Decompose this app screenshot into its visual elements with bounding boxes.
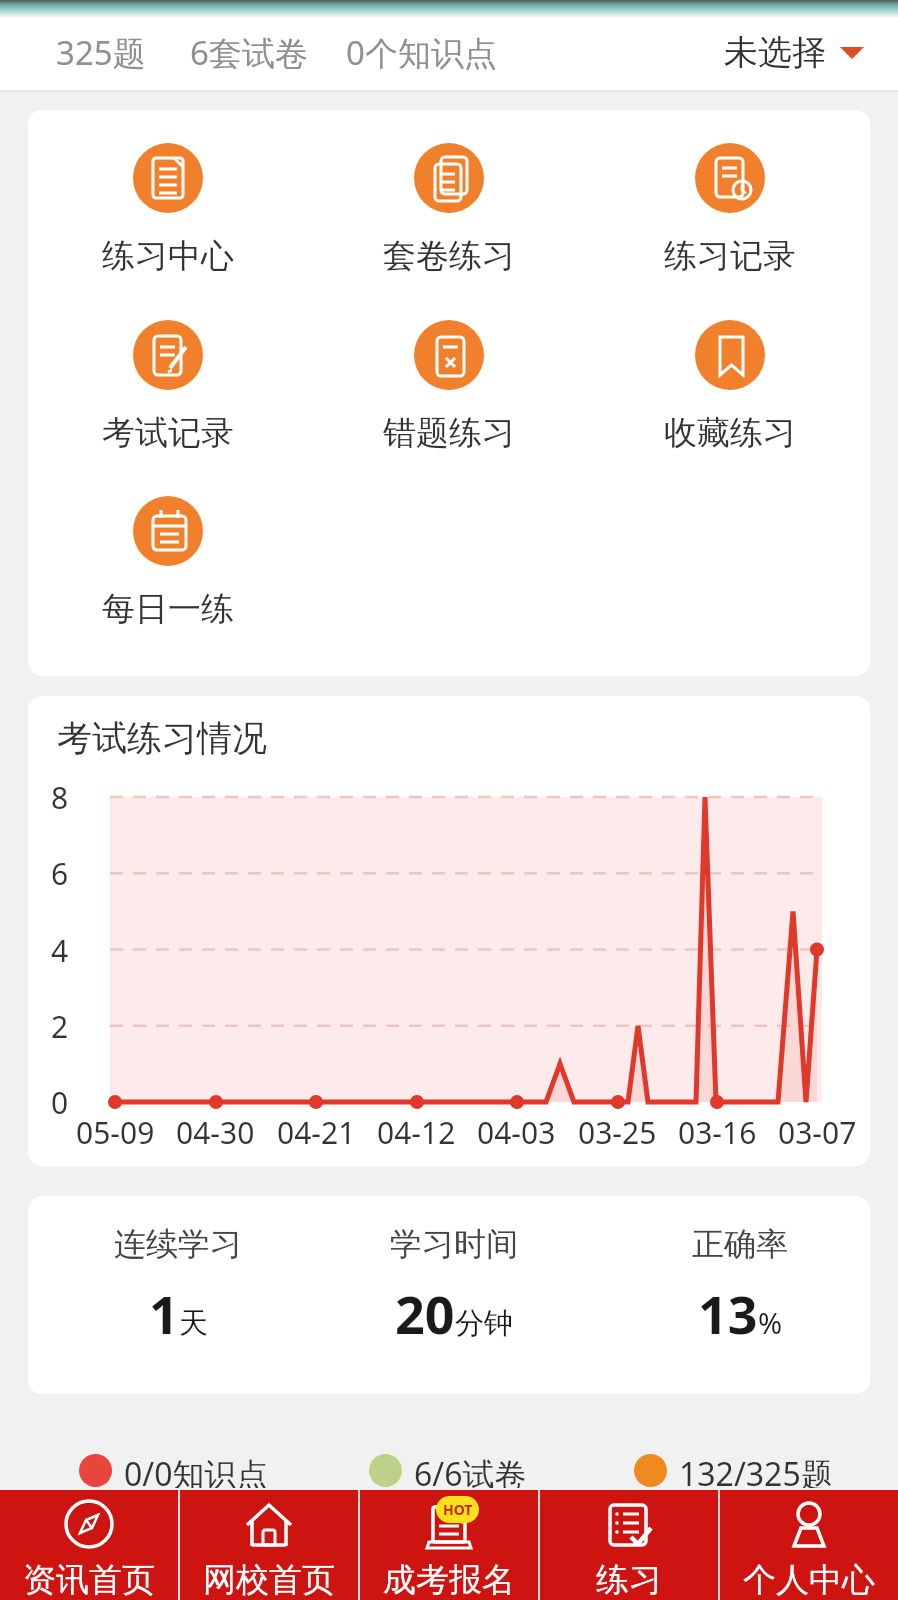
staticText: 练习中心 [102, 235, 234, 277]
button[interactable]: 未选择 [724, 31, 864, 74]
staticText: 6 [51, 853, 69, 894]
staticText: % [758, 1303, 783, 1342]
staticText: 套卷练习 [383, 235, 515, 277]
staticText: 132/325题 [679, 1452, 833, 1488]
staticText: 03-25 [578, 1112, 657, 1153]
staticText: 13 [698, 1278, 758, 1349]
staticText: 未选择 [724, 31, 826, 74]
button[interactable]: 考试记录 [48, 320, 288, 454]
staticText: 04-30 [176, 1112, 255, 1153]
button[interactable]: 学习时间 [331, 1224, 577, 1349]
staticText: 0/0知识点 [124, 1452, 269, 1488]
staticText: 04-21 [277, 1112, 356, 1153]
staticText: 04-12 [377, 1112, 456, 1153]
button[interactable]: 正确率 [617, 1224, 863, 1349]
button[interactable]: HOT [360, 1490, 538, 1600]
button[interactable]: 连续学习 [55, 1224, 301, 1349]
button[interactable]: 错题练习 [329, 320, 569, 454]
staticText: 每日一练 [102, 588, 234, 630]
staticText: 20 [395, 1278, 455, 1349]
staticText: 连续学习 [114, 1224, 242, 1264]
staticText: 成考报名 [383, 1559, 515, 1600]
button[interactable]: 网校首页 [180, 1490, 358, 1600]
staticText: 2 [51, 1006, 69, 1047]
staticText: 6/6试卷 [414, 1452, 527, 1488]
staticText: 资讯首页 [23, 1559, 155, 1600]
staticText: 练习 [596, 1559, 662, 1600]
staticText: 分钟 [455, 1305, 513, 1342]
staticText: 收藏练习 [664, 412, 796, 454]
staticText: 考试练习情况 [57, 716, 267, 760]
staticText: 8 [51, 777, 69, 818]
staticText: 考试记录 [102, 412, 234, 454]
staticText: 个人中心 [743, 1559, 875, 1600]
button[interactable]: 收藏练习 [610, 320, 850, 454]
button[interactable]: 资讯首页 [0, 1490, 178, 1600]
button[interactable]: 练习中心 [48, 143, 288, 277]
staticText: 0个知识点 [346, 30, 497, 75]
button[interactable]: 个人中心 [720, 1490, 898, 1600]
staticText: 天 [179, 1305, 208, 1342]
staticText: 0 [51, 1082, 69, 1123]
staticText: 325题 [56, 30, 146, 75]
button[interactable]: 练习 [540, 1490, 718, 1600]
staticText: 03-16 [678, 1112, 757, 1153]
button[interactable]: 练习记录 [610, 143, 850, 277]
staticText: 05-09 [76, 1112, 155, 1153]
staticText: HOT [443, 1500, 473, 1519]
staticText: 04-03 [477, 1112, 556, 1153]
staticText: 正确率 [692, 1224, 788, 1264]
button[interactable]: 每日一练 [48, 496, 288, 630]
staticText: 学习时间 [390, 1224, 518, 1264]
button[interactable]: 套卷练习 [329, 143, 569, 277]
staticText: 错题练习 [383, 412, 515, 454]
staticText: 03-07 [778, 1112, 857, 1153]
staticText: 1 [149, 1278, 179, 1349]
staticText: 4 [51, 930, 69, 971]
staticText: 6套试卷 [190, 30, 308, 75]
staticText: 练习记录 [664, 235, 796, 277]
staticText: 网校首页 [203, 1559, 335, 1600]
